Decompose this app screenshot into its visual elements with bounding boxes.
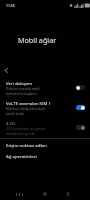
staticText: Mobil ağlar bbox=[18, 35, 57, 45]
button[interactable]: On bbox=[76, 105, 85, 110]
button[interactable]: 4.5G bbox=[0, 117, 90, 137]
staticText: Erişim noktası adları bbox=[6, 142, 47, 148]
button[interactable]: On bbox=[76, 125, 85, 130]
staticText: VoLTE aramaları SIM 1 bbox=[6, 100, 51, 106]
button[interactable]: Home bbox=[39, 188, 51, 200]
button[interactable]: Navigate up bbox=[1, 65, 11, 75]
button[interactable]: Recents bbox=[13, 188, 25, 200]
staticText: 4.5G kullanmak için ağınızın desteklemes… bbox=[6, 127, 46, 135]
staticText: 4.5G bbox=[6, 120, 16, 126]
button[interactable]: VoLTE aramaları SIM 1 bbox=[0, 97, 90, 117]
staticText: Ağ operatörleri bbox=[6, 153, 37, 159]
button[interactable]: Veri dolaşımı bbox=[0, 77, 90, 97]
staticText: 11:56 bbox=[6, 3, 15, 8]
button[interactable]: Ağ operatörleri bbox=[0, 150, 90, 161]
staticText: Dolaşım sırasında mobil hizmetlerine bağ… bbox=[6, 87, 40, 95]
button[interactable]: Off bbox=[76, 85, 85, 90]
button[interactable]: Erişim noktası adları bbox=[0, 139, 90, 150]
button[interactable]: Back bbox=[62, 188, 74, 200]
staticText: Mümkün olduğunda yüksek kaliteli kullan bbox=[6, 107, 46, 115]
staticText: Veri dolaşımı bbox=[6, 80, 32, 86]
